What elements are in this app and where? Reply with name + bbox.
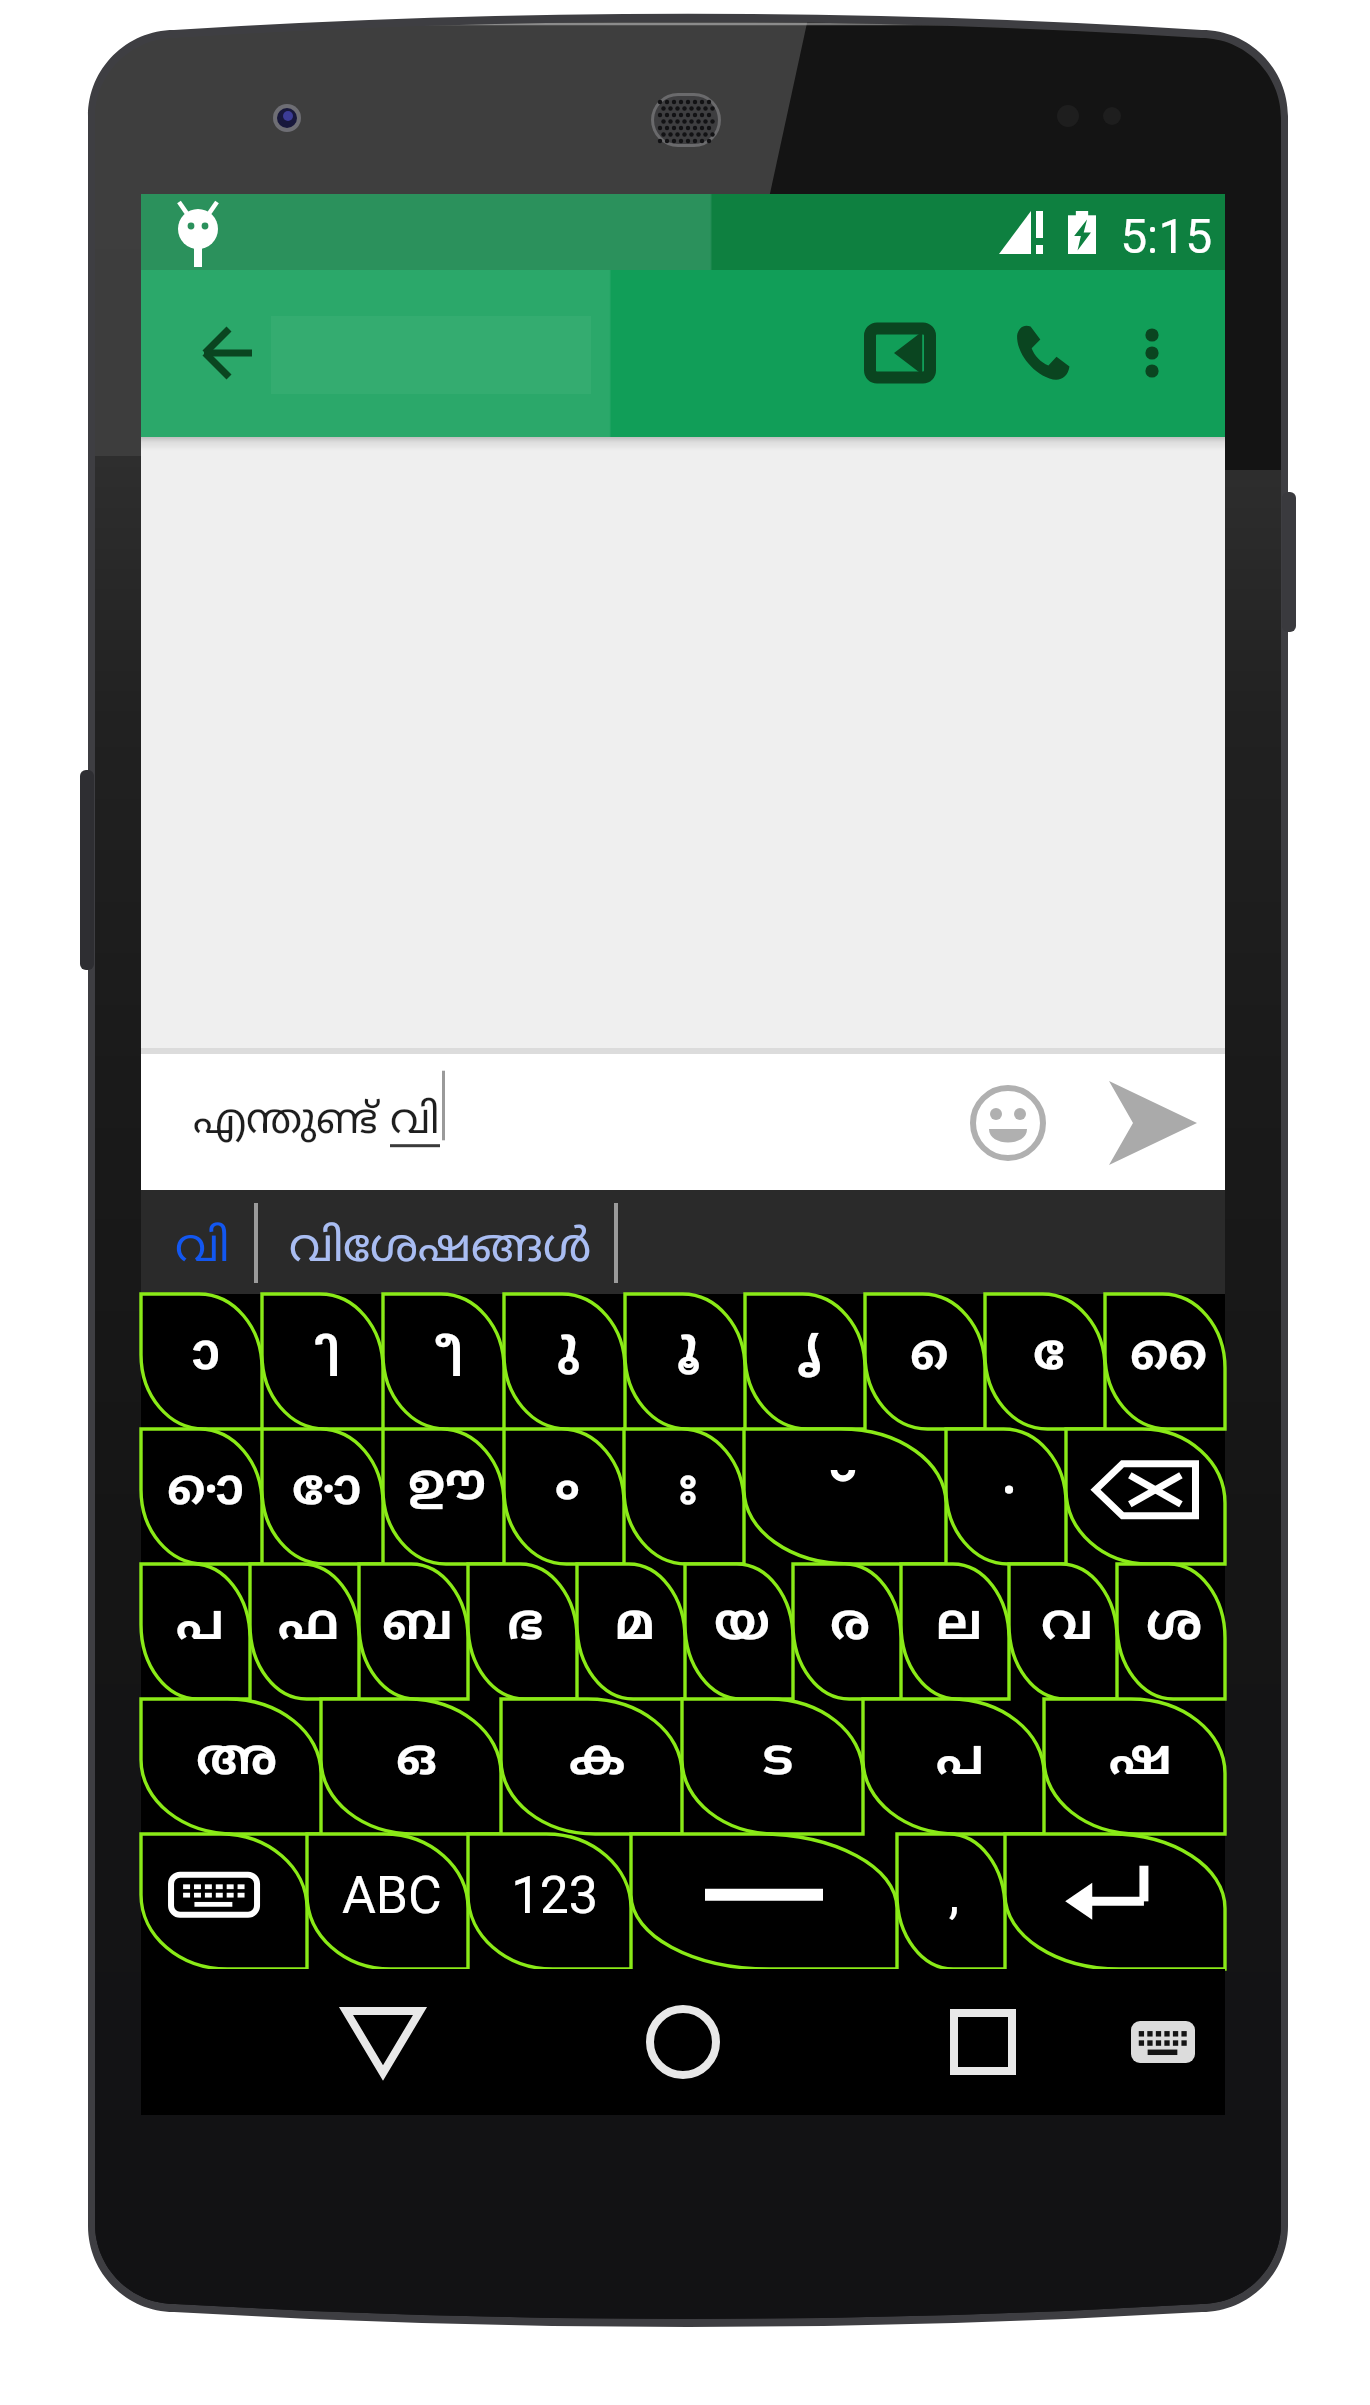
button[interactable] — [624, 1429, 744, 1564]
button[interactable]: More options — [1046, 270, 1151, 437]
button[interactable] — [744, 1429, 946, 1564]
button[interactable] — [863, 1699, 1044, 1834]
button[interactable]: Suggestion വിശേഷങ്ങൾ — [258, 1190, 614, 1294]
button[interactable]: Suggestion വി — [141, 1190, 254, 1294]
button[interactable] — [501, 1699, 682, 1834]
button[interactable] — [359, 1564, 468, 1699]
button[interactable] — [468, 1564, 577, 1699]
button[interactable] — [383, 1429, 504, 1564]
button[interactable] — [141, 1564, 250, 1699]
button[interactable]: Back — [323, 1969, 443, 2115]
button[interactable] — [1066, 1429, 1225, 1564]
button[interactable] — [1009, 1564, 1117, 1699]
button[interactable] — [141, 1429, 262, 1564]
button[interactable] — [1005, 1834, 1225, 1969]
button[interactable] — [468, 1834, 631, 1969]
button[interactable] — [685, 1564, 793, 1699]
button[interactable] — [901, 1564, 1009, 1699]
button[interactable] — [250, 1564, 359, 1699]
button[interactable]: Send — [1093, 1048, 1215, 1190]
button[interactable] — [321, 1699, 501, 1834]
button[interactable] — [504, 1429, 624, 1564]
button[interactable]: Call — [938, 270, 1046, 437]
button[interactable] — [985, 1294, 1105, 1429]
button[interactable] — [307, 1834, 468, 1969]
button[interactable] — [897, 1834, 1005, 1969]
button[interactable]: Video call — [830, 270, 938, 437]
button[interactable] — [682, 1699, 863, 1834]
button[interactable] — [1044, 1699, 1225, 1834]
button[interactable] — [262, 1294, 383, 1429]
button[interactable] — [865, 1294, 985, 1429]
button[interactable] — [946, 1429, 1066, 1564]
button[interactable] — [504, 1294, 625, 1429]
button[interactable] — [745, 1294, 865, 1429]
button[interactable] — [1105, 1294, 1225, 1429]
button[interactable]: Change keyboard — [1103, 1969, 1223, 2115]
button[interactable] — [141, 1294, 262, 1429]
button[interactable] — [625, 1294, 745, 1429]
button[interactable]: Recent apps — [921, 1969, 1041, 2115]
button[interactable] — [631, 1834, 897, 1969]
button[interactable] — [141, 1834, 307, 1969]
button[interactable] — [577, 1564, 685, 1699]
button[interactable] — [383, 1294, 504, 1429]
button[interactable] — [1117, 1564, 1225, 1699]
button[interactable] — [141, 1699, 321, 1834]
button[interactable] — [262, 1429, 383, 1564]
button[interactable]: Home — [621, 1969, 741, 2115]
button[interactable] — [793, 1564, 901, 1699]
button[interactable]: Insert emoji — [947, 1048, 1069, 1190]
button[interactable]: Navigate up — [141, 270, 315, 437]
